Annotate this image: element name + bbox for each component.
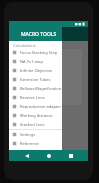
button[interactable]: Working distance [9,111,62,120]
button[interactable]: Settings [9,130,62,139]
button[interactable]: Bellows Magnification [9,84,62,93]
button[interactable]: Stacked Lens Magnification [9,120,62,129]
staticText: Reverse Lens [20,95,45,100]
staticText: Reference information [20,141,62,146]
button[interactable]: Extension Tubes [9,75,62,84]
staticText: Settings [20,132,36,137]
staticText: Focus Stacking Step Size [20,50,62,55]
staticText: Calculations [13,43,36,48]
button[interactable]: Focus Stacking Step Size [9,48,62,57]
button[interactable]: Back [22,151,31,160]
staticText: Reproduction adapter [20,104,62,109]
button[interactable]: Reproduction adapter [9,102,62,111]
button[interactable]: Reverse Lens [9,93,62,102]
staticText: Infinite Objective Focal Length [20,68,62,73]
staticText: MACRO TOOLS [21,31,57,38]
button[interactable]: Home [44,151,53,160]
button[interactable]: NA To f-stop [9,57,62,66]
staticText: Bellows Magnification [20,86,62,91]
button[interactable]: Infinite Objective Focal Length [9,66,62,75]
staticText: NA To f-stop [20,59,43,64]
button[interactable]: Recents [66,151,75,160]
staticText: Stacked Lens Magnification [20,122,62,127]
staticText: Extension Tubes [20,77,51,82]
button[interactable]: Reference information [9,139,62,148]
staticText: Working distance [20,113,53,118]
